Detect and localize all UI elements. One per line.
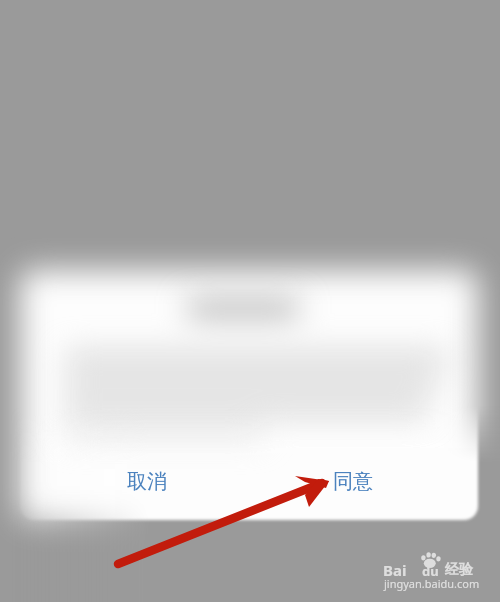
staticText: 经验	[445, 561, 473, 579]
button[interactable]: 取消	[107, 458, 187, 502]
staticText: du	[422, 562, 439, 580]
other: Annotation arrow	[0, 0, 500, 602]
staticText: 同意	[333, 469, 373, 494]
staticText: Bai	[383, 560, 407, 580]
button[interactable]: 同意	[313, 458, 393, 502]
staticText: jingyan.baidu.com	[384, 576, 480, 591]
staticText: 取消	[127, 469, 167, 494]
